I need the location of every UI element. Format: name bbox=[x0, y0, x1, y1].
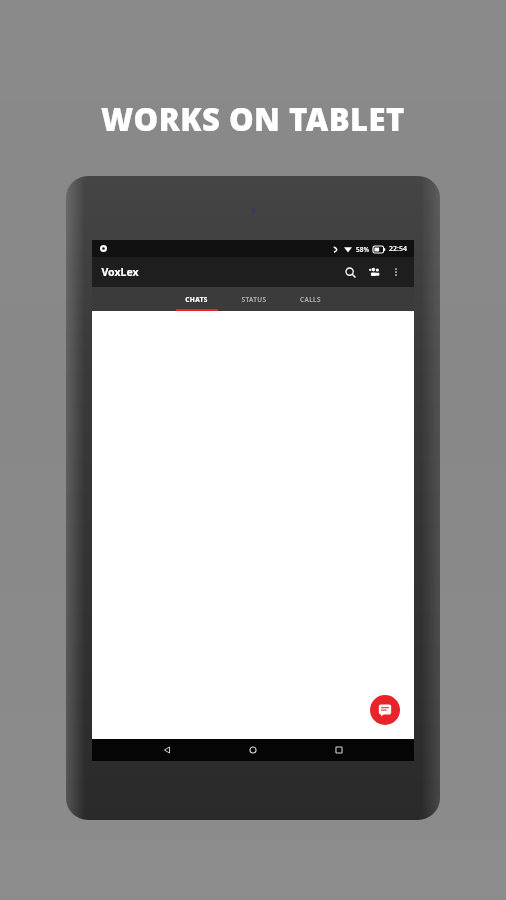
staticText: CALLS bbox=[300, 295, 321, 304]
staticText: STATUS bbox=[241, 295, 267, 304]
button[interactable]: CALLS bbox=[282, 287, 339, 311]
staticText: CHATS bbox=[185, 295, 208, 304]
button[interactable]: New group bbox=[364, 262, 384, 282]
button[interactable]: STATUS bbox=[225, 287, 282, 311]
button[interactable]: Search bbox=[340, 262, 360, 282]
staticText: WORKS ON TABLET bbox=[101, 98, 405, 140]
button[interactable]: More options bbox=[387, 263, 405, 281]
button[interactable]: CHATS bbox=[168, 287, 225, 311]
button[interactable]: Recents bbox=[328, 739, 350, 761]
staticText: VoxLex bbox=[101, 265, 139, 279]
button[interactable]: Back bbox=[156, 739, 178, 761]
button[interactable]: New chat bbox=[370, 695, 400, 725]
button[interactable]: Home bbox=[242, 739, 264, 761]
staticText: 22:54 bbox=[389, 244, 407, 254]
staticText: 58% bbox=[356, 245, 369, 254]
